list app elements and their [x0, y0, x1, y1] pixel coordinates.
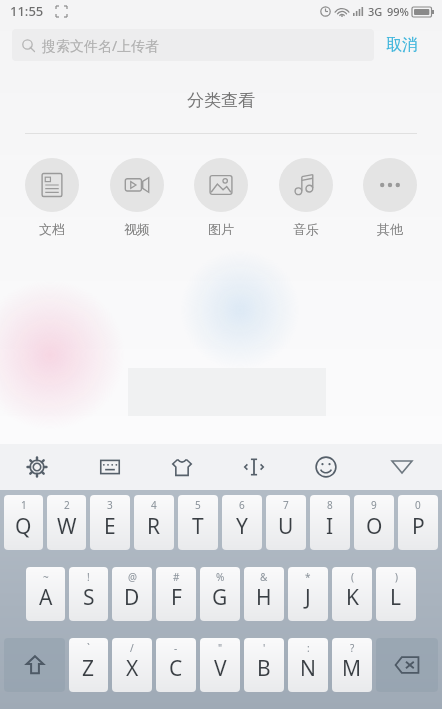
- button[interactable]: 8: [310, 495, 350, 550]
- button[interactable]: `: [69, 638, 108, 692]
- staticText: *: [305, 570, 311, 584]
- staticText: :: [307, 641, 310, 655]
- staticText: L: [390, 583, 402, 612]
- staticText: %: [216, 570, 225, 584]
- staticText: `: [87, 641, 90, 655]
- button[interactable]: -: [156, 638, 196, 692]
- staticText: M: [342, 654, 362, 683]
- staticText: 99%: [387, 4, 409, 19]
- staticText: 分类查看: [0, 90, 442, 111]
- button[interactable]: 7: [266, 495, 306, 550]
- staticText: C: [169, 654, 183, 683]
- button[interactable]: ': [244, 638, 284, 692]
- button[interactable]: 视频: [107, 158, 167, 237]
- staticText: O: [366, 512, 383, 541]
- button[interactable]: /: [112, 638, 152, 692]
- button[interactable]: Delete: [376, 638, 438, 692]
- staticText: T: [192, 512, 204, 541]
- button[interactable]: ): [376, 567, 416, 621]
- staticText: Y: [236, 512, 248, 541]
- staticText: 7: [283, 498, 289, 512]
- button[interactable]: Theme: [146, 444, 218, 490]
- staticText: ': [263, 641, 266, 655]
- staticText: ): [395, 570, 398, 584]
- staticText: F: [171, 583, 182, 612]
- button[interactable]: 6: [222, 495, 262, 550]
- staticText: 9: [371, 498, 377, 512]
- button[interactable]: ~: [26, 567, 65, 621]
- staticText: W: [57, 512, 77, 541]
- staticText: 4: [151, 498, 157, 512]
- button[interactable]: 4: [134, 495, 174, 550]
- button[interactable]: 0: [398, 495, 438, 550]
- button[interactable]: 取消: [374, 29, 430, 61]
- staticText: 取消: [386, 35, 418, 55]
- staticText: A: [39, 583, 53, 612]
- button[interactable]: 图片: [191, 158, 251, 237]
- button[interactable]: ": [200, 638, 240, 692]
- staticText: @: [128, 570, 137, 584]
- staticText: !: [87, 570, 90, 584]
- staticText: P: [412, 512, 425, 541]
- button[interactable]: 文档: [22, 158, 82, 237]
- staticText: I: [326, 512, 334, 541]
- staticText: D: [124, 583, 140, 612]
- staticText: X: [126, 654, 139, 683]
- button[interactable]: @: [112, 567, 152, 621]
- button[interactable]: 搜索文件名/上传者: [12, 29, 374, 61]
- staticText: N: [300, 654, 316, 683]
- staticText: #: [173, 570, 180, 584]
- staticText: Z: [82, 654, 95, 683]
- button[interactable]: ?: [332, 638, 372, 692]
- button[interactable]: Cursor: [218, 444, 290, 490]
- button[interactable]: Settings: [0, 444, 73, 490]
- button[interactable]: 音乐: [276, 158, 336, 237]
- staticText: 搜索文件名/上传者: [42, 36, 160, 55]
- staticText: B: [257, 654, 271, 683]
- staticText: 1: [21, 498, 27, 512]
- button[interactable]: 1: [4, 495, 43, 550]
- button[interactable]: 3: [90, 495, 130, 550]
- staticText: 6: [239, 498, 245, 512]
- staticText: ?: [350, 641, 355, 655]
- staticText: 3: [107, 498, 113, 512]
- button[interactable]: !: [69, 567, 108, 621]
- button[interactable]: %: [200, 567, 240, 621]
- staticText: 文档: [39, 221, 65, 237]
- staticText: H: [256, 583, 272, 612]
- button[interactable]: *: [288, 567, 328, 621]
- staticText: S: [83, 583, 95, 612]
- button[interactable]: 其他: [360, 158, 420, 237]
- button[interactable]: Keyboard: [73, 444, 146, 490]
- staticText: 视频: [124, 221, 150, 237]
- staticText: Q: [15, 512, 32, 541]
- staticText: V: [214, 654, 227, 683]
- staticText: K: [346, 583, 359, 612]
- button[interactable]: 2: [47, 495, 86, 550]
- staticText: 0: [415, 498, 421, 512]
- staticText: 5: [195, 498, 201, 512]
- staticText: R: [147, 512, 161, 541]
- button[interactable]: (: [332, 567, 372, 621]
- staticText: &: [260, 570, 268, 584]
- staticText: /: [130, 641, 134, 655]
- button[interactable]: Emoji: [290, 444, 362, 490]
- button[interactable]: &: [244, 567, 284, 621]
- staticText: ": [218, 641, 223, 655]
- staticText: 音乐: [293, 221, 319, 237]
- staticText: 8: [327, 498, 333, 512]
- button[interactable]: #: [156, 567, 196, 621]
- button[interactable]: :: [288, 638, 328, 692]
- button[interactable]: Hide keyboard: [362, 444, 442, 490]
- staticText: 11:55: [10, 2, 44, 20]
- staticText: (: [351, 570, 354, 584]
- staticText: G: [212, 583, 228, 612]
- staticText: -: [174, 641, 178, 655]
- button[interactable]: Shift: [4, 638, 65, 692]
- staticText: 2: [64, 498, 70, 512]
- staticText: 3G: [368, 4, 383, 19]
- button[interactable]: 9: [354, 495, 394, 550]
- button[interactable]: 5: [178, 495, 218, 550]
- staticText: E: [104, 512, 116, 541]
- staticText: J: [305, 583, 311, 612]
